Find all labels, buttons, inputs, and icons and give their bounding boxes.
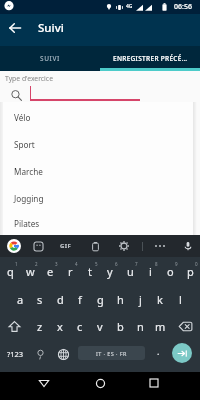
button[interactable]: r — [60, 258, 80, 284]
staticText: ?123 — [7, 349, 24, 359]
staticText: j — [139, 292, 142, 307]
staticText: 0 — [195, 261, 198, 267]
button[interactable]: p — [180, 258, 200, 284]
button[interactable]: h — [110, 286, 130, 312]
staticText: IT · ES · FR — [96, 350, 127, 357]
button[interactable]: m — [150, 313, 170, 339]
staticText: y — [107, 264, 113, 279]
button[interactable]: Settings — [113, 235, 135, 257]
button[interactable]: Back — [33, 372, 55, 394]
button[interactable]: n — [130, 313, 150, 339]
staticText: 8 — [155, 261, 158, 267]
button[interactable]: GIF — [55, 235, 77, 257]
staticText: GIF — [60, 242, 72, 250]
button[interactable]: q — [0, 258, 20, 284]
button[interactable]: Vélo — [3, 104, 193, 131]
button[interactable]: Enter — [168, 339, 196, 367]
button[interactable]: y — [100, 258, 120, 284]
button[interactable]: . — [148, 339, 168, 367]
staticText: t — [88, 264, 92, 279]
button[interactable]: Change keyboard language — [53, 340, 73, 368]
staticText: . — [157, 345, 160, 357]
button[interactable]: z — [30, 313, 50, 339]
staticText: c — [77, 319, 83, 334]
button[interactable]: IT · ES · FR — [78, 346, 145, 360]
button[interactable]: l — [170, 286, 190, 312]
staticText: n — [137, 319, 144, 334]
staticText: v — [97, 319, 103, 334]
staticText: Type d'exercice — [5, 74, 53, 83]
button[interactable]: SUIVI — [0, 46, 100, 71]
staticText: Marche — [14, 166, 43, 177]
staticText: e — [47, 264, 54, 279]
button[interactable]: g — [90, 286, 110, 312]
button[interactable]: Jogging — [3, 185, 193, 212]
staticText: u — [127, 264, 134, 279]
staticText: 4 — [75, 261, 78, 267]
button[interactable]: Recent apps — [143, 372, 165, 394]
button[interactable]: e — [40, 258, 60, 284]
button[interactable]: Marche — [3, 158, 193, 185]
button[interactable]: Home — [89, 372, 111, 394]
staticText: 6 — [115, 261, 118, 267]
button[interactable]: c — [70, 313, 90, 339]
staticText: Vélo — [14, 112, 31, 123]
staticText: SUIVI — [40, 54, 60, 63]
staticText: m — [155, 319, 166, 334]
staticText: 9 — [175, 261, 178, 267]
button[interactable]: Backspace — [170, 313, 200, 339]
button[interactable]: Back — [0, 13, 30, 43]
staticText: 7 — [135, 261, 138, 267]
button[interactable]: Sport — [3, 131, 193, 158]
staticText: k — [157, 292, 163, 307]
button[interactable]: o — [160, 258, 180, 284]
staticText: h — [117, 292, 124, 307]
staticText: l — [179, 292, 182, 307]
button[interactable]: w — [20, 258, 40, 284]
staticText: 3 — [55, 261, 58, 267]
staticText: f — [78, 292, 82, 307]
staticText: i — [149, 264, 152, 279]
staticText: 1 — [15, 261, 18, 267]
button[interactable]: x — [50, 313, 70, 339]
button[interactable]: Clipboard — [84, 235, 106, 257]
staticText: q — [7, 264, 14, 279]
button[interactable]: a — [10, 286, 30, 312]
staticText: Jogging — [14, 193, 44, 204]
staticText: 2 — [35, 261, 38, 267]
button[interactable]: i — [140, 258, 160, 284]
button[interactable]: Pilates — [3, 212, 193, 235]
staticText: 4G — [126, 3, 133, 10]
button[interactable]: j — [130, 286, 150, 312]
staticText: a — [17, 292, 24, 307]
button[interactable]: d — [50, 286, 70, 312]
staticText: g — [97, 292, 104, 307]
button[interactable]: ENREGISTRER PRÉCÉ… — [100, 46, 200, 71]
button[interactable]: b — [110, 313, 130, 339]
button[interactable]: f — [70, 286, 90, 312]
staticText: Pilates — [14, 218, 40, 229]
button[interactable]: k — [150, 286, 170, 312]
staticText: p — [187, 264, 194, 279]
button[interactable]: Emoji — [30, 340, 50, 368]
button[interactable]: More options — [149, 235, 171, 257]
button[interactable]: u — [120, 258, 140, 284]
staticText: z — [37, 319, 43, 334]
staticText: 5 — [95, 261, 98, 267]
staticText: w — [26, 264, 35, 279]
staticText: d — [57, 292, 64, 307]
staticText: o — [167, 264, 174, 279]
button[interactable]: t — [80, 258, 100, 284]
button[interactable]: s — [30, 286, 50, 312]
staticText: 06:56 — [174, 2, 192, 12]
staticText: r — [68, 264, 73, 279]
button[interactable]: Stickers — [27, 235, 49, 257]
button[interactable]: Shift — [0, 313, 28, 339]
button[interactable]: Google — [3, 235, 25, 257]
staticText: ENREGISTRER PRÉCÉ… — [113, 54, 188, 63]
button[interactable]: v — [90, 313, 110, 339]
button[interactable]: Voice input — [177, 235, 199, 257]
staticText: s — [37, 292, 43, 307]
button[interactable]: ?123 — [1, 340, 29, 368]
staticText: Sport — [14, 139, 35, 150]
